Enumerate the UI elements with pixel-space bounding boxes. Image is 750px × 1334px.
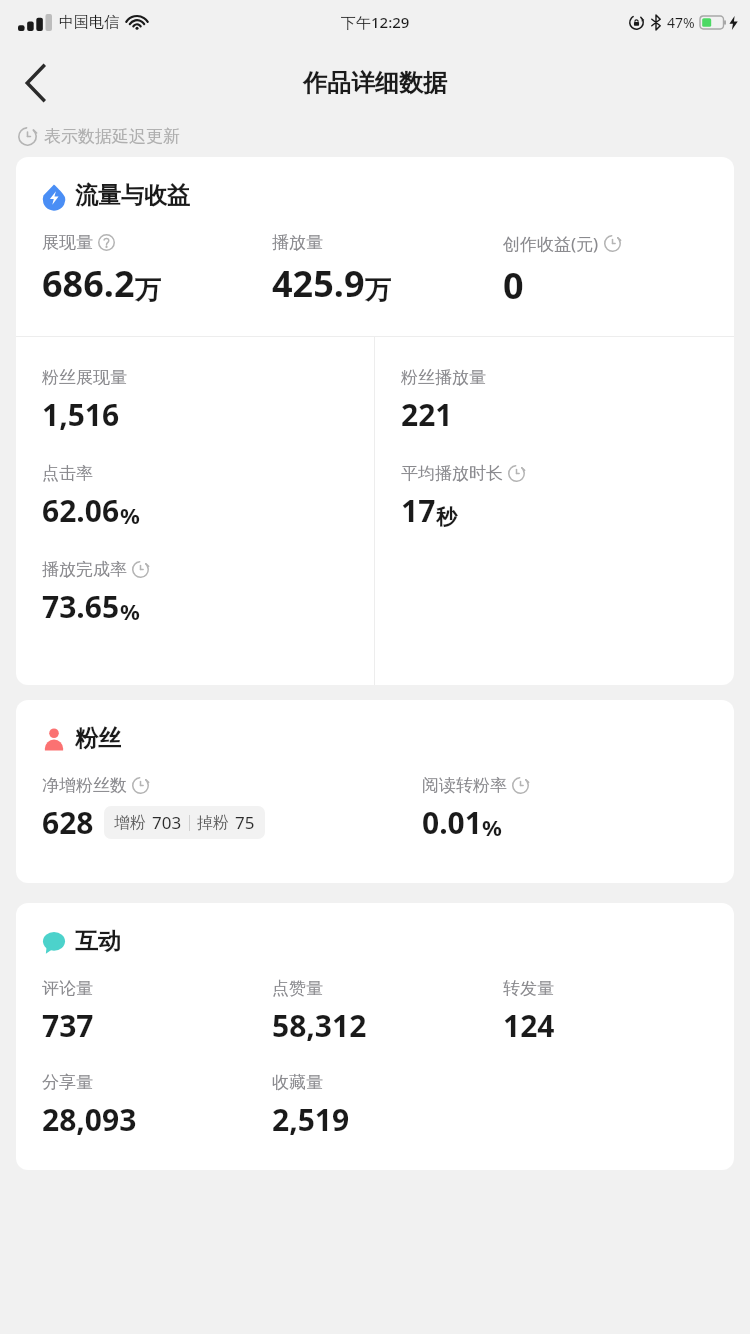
staticText: 0.01 (422, 802, 482, 843)
staticText: % (482, 812, 502, 842)
staticText: 表示数据延迟更新 (44, 126, 180, 147)
staticText: 播放完成率 (42, 559, 127, 580)
staticText: % (120, 596, 140, 626)
staticText: 评论量 (42, 978, 93, 999)
staticText: 中国电信 (59, 13, 119, 32)
staticText: 1,516 (42, 394, 120, 435)
staticText: 58,312 (272, 1005, 367, 1046)
staticText: 17 (401, 490, 436, 531)
staticText: 628 (42, 802, 94, 843)
staticText: 展现量 (42, 232, 93, 253)
staticText: 分享量 (42, 1072, 93, 1093)
staticText: 作品详细数据 (303, 68, 447, 98)
staticText: 阅读转粉率 (422, 775, 507, 796)
staticText: % (120, 500, 140, 530)
staticText: 75 (235, 811, 255, 834)
staticText: 平均播放时长 (401, 463, 503, 484)
staticText: 2,519 (272, 1099, 350, 1140)
staticText: 万 (365, 274, 391, 307)
staticText: 703 (152, 811, 182, 834)
staticText: 221 (401, 394, 453, 435)
staticText: 增粉 (114, 813, 146, 833)
staticText: 秒 (436, 504, 457, 530)
staticText: 28,093 (42, 1099, 137, 1140)
staticText: 净增粉丝数 (42, 775, 127, 796)
staticText: 播放量 (272, 232, 323, 253)
staticText: 掉粉 (197, 813, 229, 833)
staticText: 0 (503, 261, 524, 310)
staticText: 686.2 (42, 259, 135, 308)
staticText: 737 (42, 1005, 94, 1046)
staticText: 创作收益(元) (503, 232, 599, 255)
staticText: 粉丝播放量 (401, 367, 486, 388)
staticText: 73.65 (42, 586, 120, 627)
staticText: 下午12:29 (341, 12, 410, 32)
button[interactable]: Back (8, 55, 64, 111)
staticText: 收藏量 (272, 1072, 323, 1093)
staticText: 粉丝展现量 (42, 367, 127, 388)
staticText: 124 (503, 1005, 555, 1046)
staticText: 点击率 (42, 463, 93, 484)
staticText: 万 (135, 274, 161, 307)
staticText: 流量与收益 (75, 181, 190, 210)
staticText: 互动 (75, 927, 121, 956)
staticText: 47% (667, 13, 695, 32)
staticText: 转发量 (503, 978, 554, 999)
staticText: 425.9 (272, 259, 365, 308)
staticText: 粉丝 (75, 724, 121, 753)
staticText: 62.06 (42, 490, 120, 531)
staticText: 点赞量 (272, 978, 323, 999)
